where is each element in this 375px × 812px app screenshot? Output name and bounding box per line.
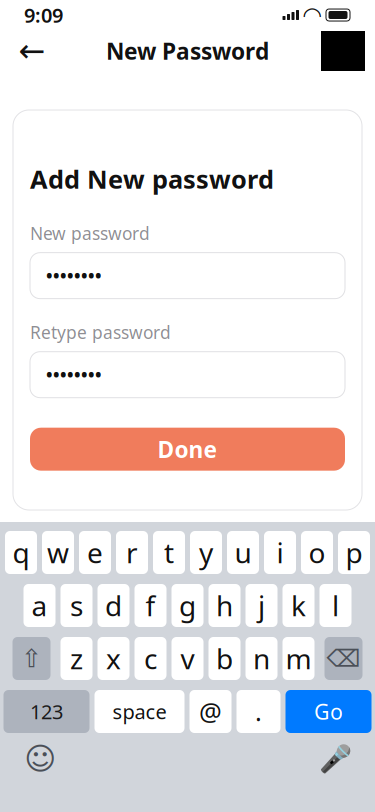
staticText: .: [255, 695, 262, 728]
staticText: h: [216, 587, 233, 624]
staticText: b: [216, 640, 233, 677]
staticText: z: [70, 640, 83, 677]
staticText: t: [164, 534, 174, 571]
button[interactable]: ••••••••: [30, 253, 345, 299]
button[interactable]: v: [171, 637, 203, 680]
staticText: 9:09: [24, 2, 63, 28]
staticText: f: [145, 587, 155, 624]
button[interactable]: t: [153, 531, 185, 574]
staticText: 123: [30, 698, 63, 725]
button[interactable]: j: [245, 584, 277, 627]
button[interactable]: Go: [285, 690, 371, 733]
button[interactable]: @: [189, 690, 231, 733]
button[interactable]: m: [282, 637, 314, 680]
staticText: s: [70, 587, 83, 624]
button[interactable]: f: [134, 584, 166, 627]
button[interactable]: 123: [3, 690, 89, 733]
staticText: a: [31, 587, 47, 624]
button[interactable]: k: [282, 584, 314, 627]
staticText: p: [345, 534, 362, 571]
staticText: n: [253, 640, 270, 677]
staticText: v: [180, 640, 194, 677]
button[interactable]: l: [319, 584, 351, 627]
button[interactable]: ••••••••: [30, 352, 345, 398]
staticText: Done: [157, 434, 217, 464]
staticText: x: [106, 640, 121, 677]
button[interactable]: Emoji: [20, 740, 60, 778]
button[interactable]: Shift: [12, 637, 50, 680]
staticText: w: [47, 534, 69, 571]
staticText: k: [291, 587, 306, 624]
button[interactable]: q: [5, 531, 37, 574]
staticText: ◠: [303, 2, 320, 28]
button[interactable]: s: [60, 584, 92, 627]
staticText: @: [199, 695, 222, 728]
staticText: y: [199, 534, 213, 571]
staticText: j: [258, 587, 265, 624]
staticText: ••••••••: [46, 363, 102, 386]
button[interactable]: e: [79, 531, 111, 574]
staticText: ••••••••: [46, 264, 102, 287]
staticText: space: [112, 698, 166, 725]
staticText: ←: [18, 33, 45, 69]
button[interactable]: .: [236, 690, 280, 733]
staticText: Go: [314, 697, 343, 726]
button[interactable]: o: [301, 531, 333, 574]
button[interactable]: x: [97, 637, 129, 680]
button[interactable]: Done: [30, 428, 345, 471]
staticText: o: [308, 534, 325, 571]
staticText: r: [126, 534, 138, 571]
button[interactable]: p: [338, 531, 370, 574]
button[interactable]: w: [42, 531, 74, 574]
button[interactable]: b: [208, 637, 240, 680]
button[interactable]: c: [134, 637, 166, 680]
staticText: c: [144, 640, 157, 677]
button[interactable]: n: [245, 637, 277, 680]
staticText: New password: [30, 222, 150, 245]
staticText: g: [179, 587, 196, 624]
button[interactable]: i: [264, 531, 296, 574]
button[interactable]: h: [208, 584, 240, 627]
staticText: Retype password: [30, 321, 171, 344]
staticText: ⇧: [21, 644, 42, 673]
button[interactable]: d: [97, 584, 129, 627]
staticText: l: [332, 587, 339, 624]
button[interactable]: a: [23, 584, 55, 627]
staticText: u: [234, 534, 251, 571]
staticText: q: [12, 534, 29, 571]
button[interactable]: g: [171, 584, 203, 627]
button[interactable]: y: [190, 531, 222, 574]
staticText: 🎤: [318, 744, 351, 774]
staticText: e: [87, 534, 103, 571]
staticText: Add New password: [30, 162, 274, 196]
button[interactable]: u: [227, 531, 259, 574]
staticText: m: [285, 640, 311, 677]
button[interactable]: Back: [10, 31, 54, 71]
staticText: d: [105, 587, 122, 624]
button[interactable]: z: [60, 637, 92, 680]
button[interactable]: Dictation: [315, 740, 355, 778]
staticText: ☺: [24, 742, 56, 776]
staticText: ⌫: [326, 645, 360, 672]
staticText: New Password: [106, 36, 269, 66]
staticText: i: [276, 534, 283, 571]
button[interactable]: space: [94, 690, 184, 733]
button[interactable]: Delete: [324, 637, 362, 680]
button[interactable]: r: [116, 531, 148, 574]
